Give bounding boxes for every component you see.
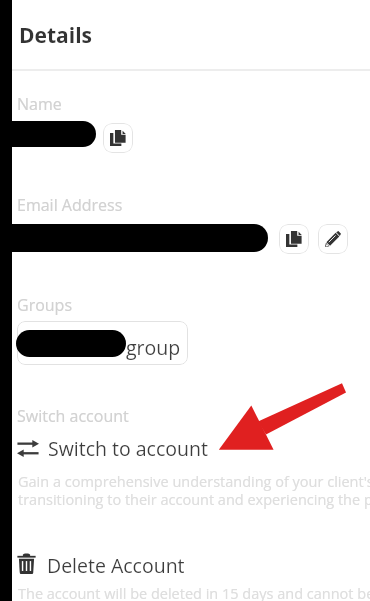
staticText: Gain a comprehensive understanding of yo… xyxy=(18,472,370,509)
button[interactable]: Edit email address xyxy=(318,224,348,254)
staticText: Switch to account xyxy=(48,435,208,462)
staticText: Email Address xyxy=(17,194,123,216)
staticText: Groups xyxy=(17,294,73,316)
staticText: Name xyxy=(17,93,62,115)
button[interactable]: Copy email address xyxy=(279,224,309,254)
button[interactable]: Switch to account xyxy=(0,432,370,462)
staticText: Delete Account xyxy=(47,552,185,579)
staticText: Switch account xyxy=(17,405,129,427)
button[interactable]: group xyxy=(17,321,188,365)
staticText: group xyxy=(126,334,181,361)
staticText: Details xyxy=(19,21,93,50)
button[interactable]: Delete Account xyxy=(0,549,370,579)
staticText: The account will be deleted in 15 days a… xyxy=(18,584,370,601)
button[interactable]: Copy name xyxy=(103,123,133,153)
